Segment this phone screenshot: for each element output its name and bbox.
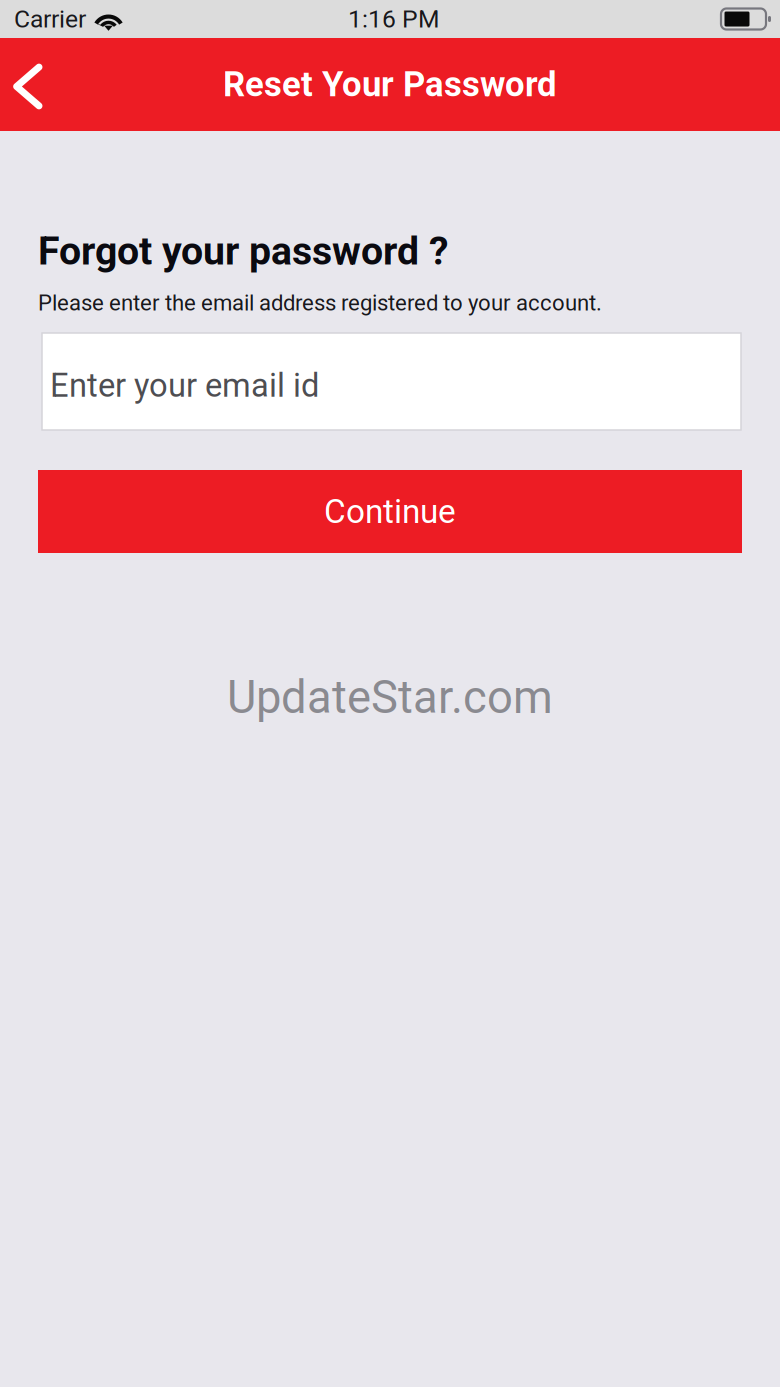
staticText: Carrier: [14, 4, 86, 33]
staticText: Forgot your password ?: [38, 228, 449, 274]
button[interactable]: Back: [0, 38, 64, 131]
button[interactable]: Enter your email id: [38, 333, 741, 430]
staticText: UpdateStar.com: [227, 671, 553, 724]
button[interactable]: Continue: [38, 470, 742, 553]
staticText: Continue: [324, 492, 456, 531]
staticText: Enter your email id: [50, 366, 319, 405]
staticText: 1:16 PM: [348, 4, 440, 33]
staticText: Reset Your Password: [223, 64, 557, 105]
staticText: Please enter the email address registere…: [38, 290, 602, 316]
